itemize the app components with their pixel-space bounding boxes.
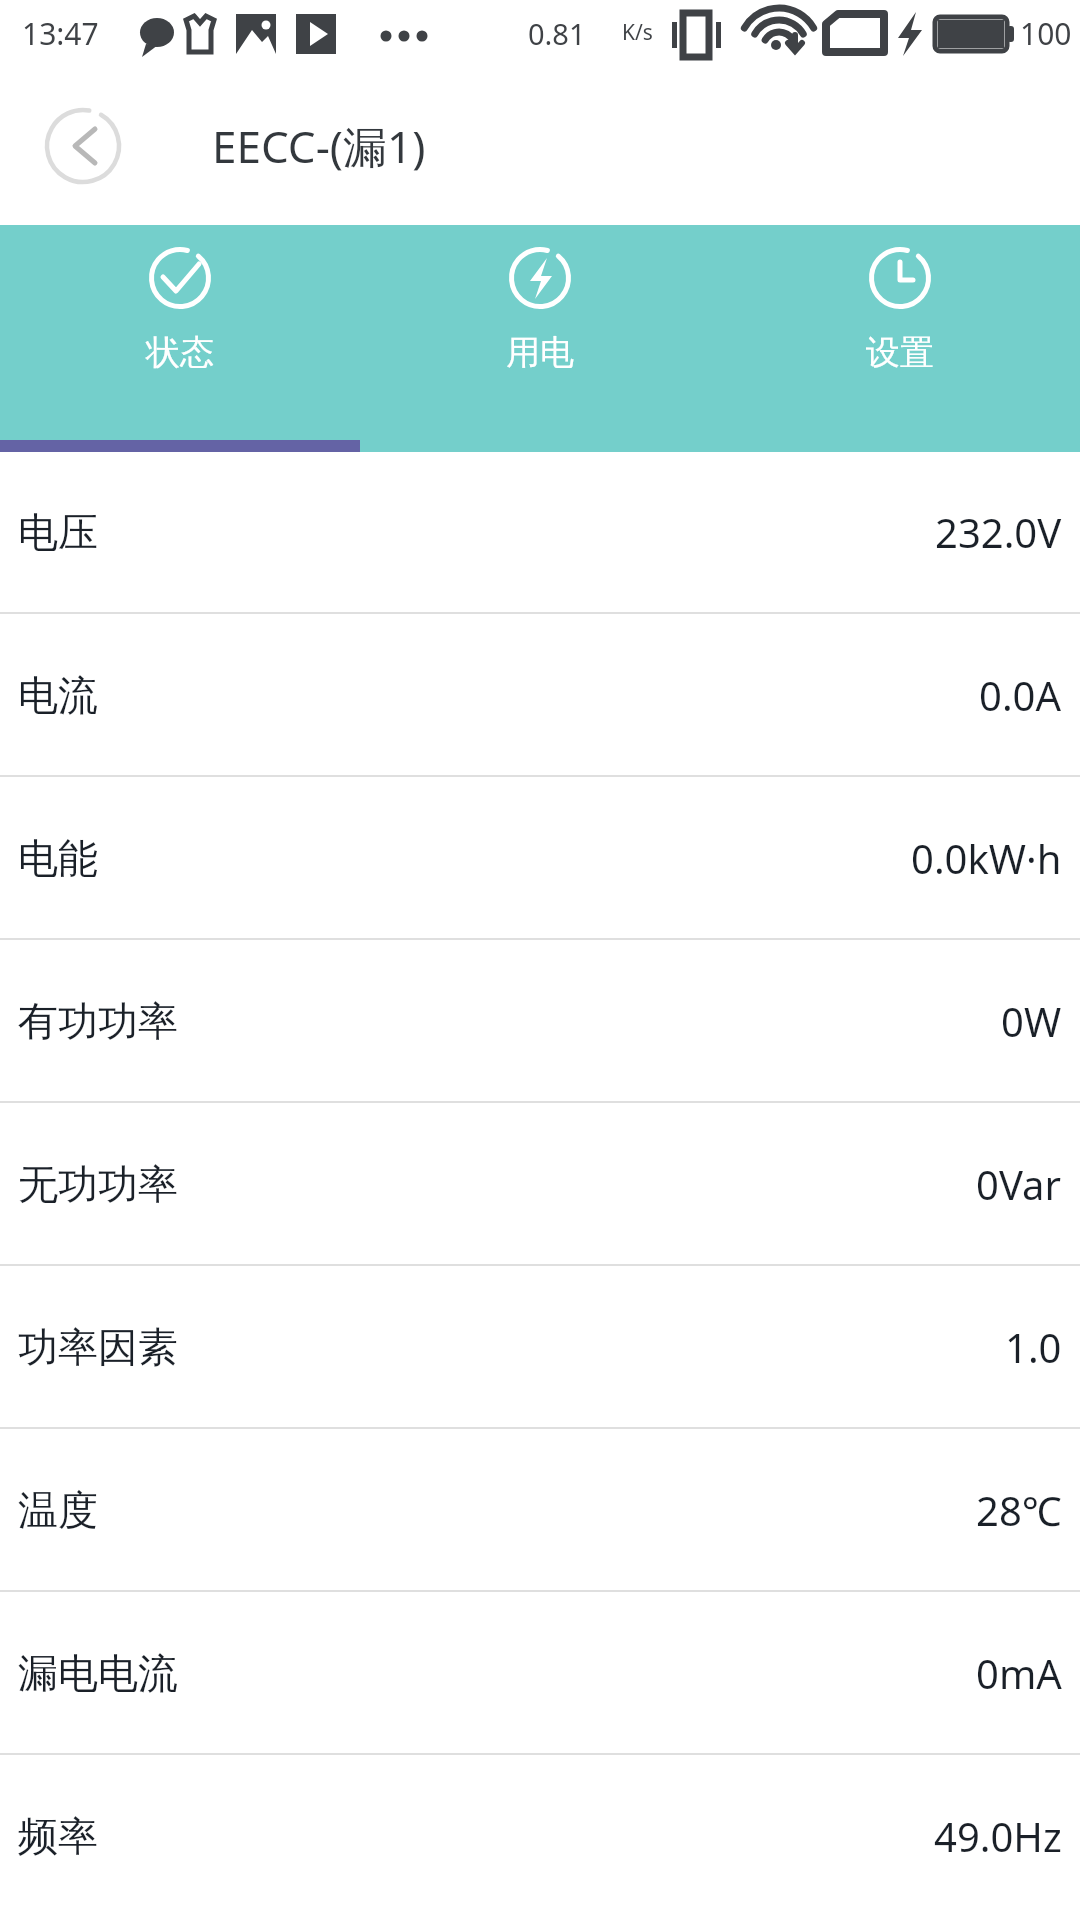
staticText: 漏电电流 [18, 1648, 178, 1698]
button[interactable]: 无功功率 [0, 1103, 1080, 1264]
staticText: 有功功率 [18, 996, 178, 1046]
staticText: EECC-(漏1) [212, 116, 426, 176]
button[interactable]: 电压 [0, 452, 1080, 612]
button[interactable]: 温度 [0, 1429, 1080, 1590]
staticText: 用电 [506, 331, 574, 374]
staticText: 电流 [18, 670, 98, 720]
staticText: 电能 [18, 833, 98, 883]
staticText: 功率因素 [18, 1322, 178, 1372]
staticText: 232.0V [935, 505, 1062, 559]
button[interactable]: 用电 [360, 225, 720, 440]
button[interactable]: 功率因素 [0, 1266, 1080, 1427]
staticText: 0Var [976, 1157, 1062, 1211]
staticText: 电压 [18, 507, 98, 557]
button[interactable]: 有功功率 [0, 940, 1080, 1101]
staticText: 0.81 [528, 14, 586, 53]
staticText: 设置 [866, 331, 934, 374]
staticText: 频率 [18, 1811, 98, 1861]
staticText: 0mA [976, 1646, 1062, 1700]
button[interactable]: 设置 [720, 225, 1080, 440]
staticText: 0.0kW·h [911, 831, 1062, 885]
staticText: 28℃ [976, 1483, 1062, 1537]
staticText: 1.0 [1005, 1320, 1062, 1374]
button[interactable]: 电流 [0, 614, 1080, 775]
button[interactable]: 漏电电流 [0, 1592, 1080, 1753]
button[interactable]: 状态 [0, 225, 360, 440]
staticText: 0W [1001, 994, 1062, 1048]
staticText: 13:47 [22, 13, 99, 54]
staticText: 0.0A [979, 668, 1062, 722]
staticText: 100 [1020, 13, 1072, 54]
staticText: 状态 [146, 331, 214, 374]
staticText: K/s [622, 18, 653, 47]
staticText: 温度 [18, 1485, 98, 1535]
staticText: 无功功率 [18, 1159, 178, 1209]
button[interactable]: Back [44, 107, 122, 185]
button[interactable]: 频率 [0, 1755, 1080, 1916]
staticText: 49.0Hz [934, 1809, 1062, 1863]
button[interactable]: 电能 [0, 777, 1080, 938]
